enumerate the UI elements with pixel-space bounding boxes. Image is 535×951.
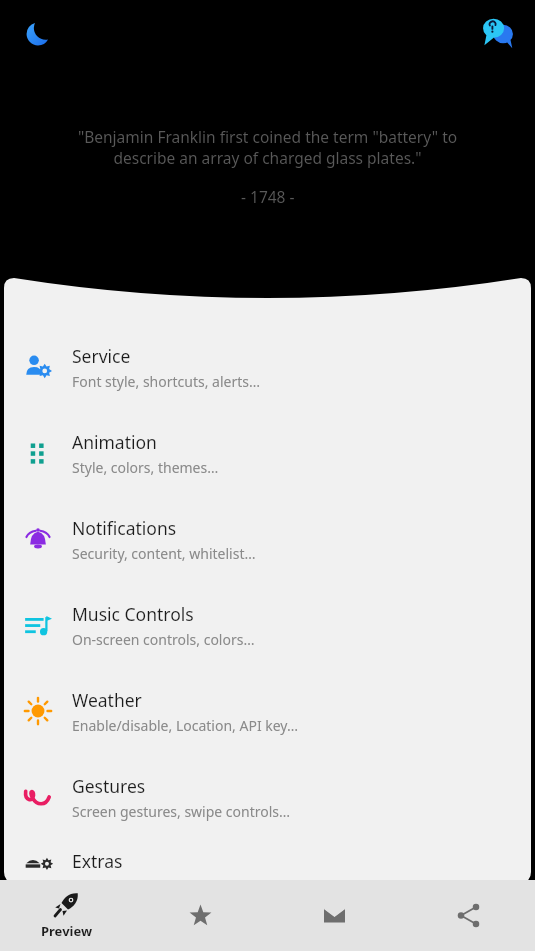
button[interactable]: Service bbox=[4, 324, 531, 410]
button[interactable]: Favorites bbox=[133, 880, 267, 951]
staticText: Preview bbox=[41, 922, 93, 940]
button[interactable]: Extras bbox=[4, 840, 531, 882]
button[interactable]: Dark mode bbox=[18, 14, 58, 54]
staticText: Music Controls bbox=[72, 602, 194, 626]
staticText: Screen gestures, swipe controls… bbox=[72, 802, 291, 821]
staticText: Service bbox=[72, 344, 131, 368]
button[interactable]: Gestures bbox=[4, 754, 531, 840]
button[interactable]: Share bbox=[401, 880, 535, 951]
staticText: Gestures bbox=[72, 774, 146, 798]
staticText: Font style, shortcuts, alerts… bbox=[72, 372, 261, 391]
staticText: Animation bbox=[72, 430, 157, 454]
staticText: Notifications bbox=[72, 516, 177, 540]
staticText: "Benjamin Franklin first coined the term… bbox=[58, 126, 477, 169]
staticText: Style, colors, themes… bbox=[72, 458, 219, 477]
button[interactable]: Animation bbox=[4, 410, 531, 496]
staticText: Extras bbox=[72, 849, 123, 873]
button[interactable]: Help bbox=[475, 10, 521, 56]
button[interactable]: Notifications bbox=[4, 496, 531, 582]
staticText: Weather bbox=[72, 688, 142, 712]
staticText: Security, content, whitelist… bbox=[72, 544, 256, 563]
button[interactable]: Weather bbox=[4, 668, 531, 754]
button[interactable]: Email bbox=[267, 880, 401, 951]
staticText: - 1748 - bbox=[241, 186, 295, 207]
staticText: Enable/disable, Location, API key… bbox=[72, 716, 299, 735]
button[interactable]: Music Controls bbox=[4, 582, 531, 668]
staticText: On-screen controls, colors… bbox=[72, 630, 255, 649]
button[interactable]: Preview bbox=[0, 880, 133, 951]
